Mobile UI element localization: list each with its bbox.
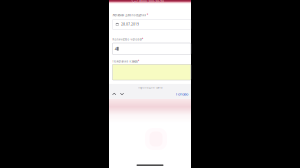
staticText: Пароль для сайта: [138, 86, 162, 89]
staticText: Пожелания к заказу: [112, 60, 137, 63]
button[interactable]: Next field: [120, 92, 124, 96]
staticText: Желаемая дата посещения: [112, 13, 146, 17]
staticText: +7 (800) 300-30-90: [134, 0, 164, 3]
button[interactable]: Готово: [176, 91, 188, 97]
staticText: *: [138, 60, 139, 63]
staticText: Количество человек: [112, 38, 141, 41]
staticText: *: [147, 13, 148, 17]
staticText: *: [142, 38, 143, 41]
button[interactable]: Previous field: [112, 92, 116, 96]
button[interactable]: +7 (800) 300-30-90: [109, 0, 191, 4]
staticText: 28.07.2019: [121, 23, 139, 26]
staticText: 4: [115, 46, 117, 51]
staticText: Готово: [176, 91, 188, 97]
